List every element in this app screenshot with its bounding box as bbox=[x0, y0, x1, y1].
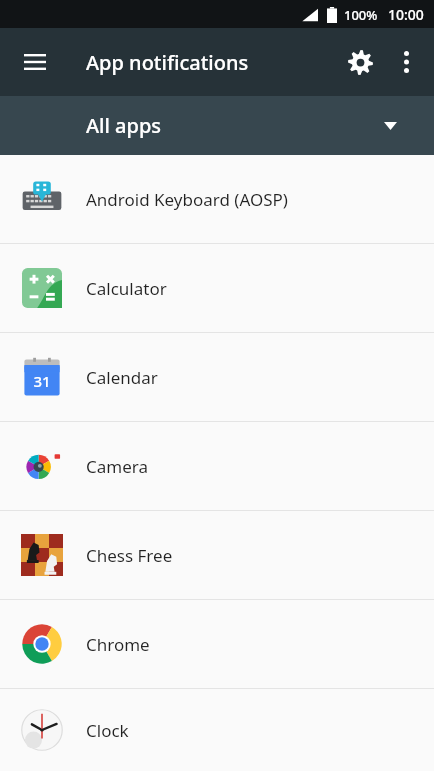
staticText: App notifications bbox=[86, 49, 249, 76]
staticText: Calendar bbox=[86, 366, 158, 389]
button[interactable]: 31 bbox=[0, 333, 434, 421]
button[interactable]: Calculator bbox=[0, 244, 434, 332]
button[interactable]: Android Keyboard (AOSP) bbox=[0, 155, 434, 243]
staticText: Android Keyboard (AOSP) bbox=[86, 188, 288, 211]
button[interactable]: Settings bbox=[336, 38, 384, 86]
staticText: Chrome bbox=[86, 633, 150, 656]
staticText: Calculator bbox=[86, 277, 167, 300]
button[interactable]: All apps bbox=[0, 96, 434, 155]
staticText: Chess Free bbox=[86, 544, 173, 567]
button[interactable]: Camera bbox=[0, 422, 434, 510]
staticText: 31 bbox=[33, 371, 51, 391]
staticText: Camera bbox=[86, 455, 148, 478]
staticText: All apps bbox=[86, 112, 162, 139]
staticText: Clock bbox=[86, 719, 129, 742]
button[interactable]: Chess Free bbox=[0, 511, 434, 599]
button[interactable]: Chrome bbox=[0, 600, 434, 688]
button[interactable]: Open navigation drawer bbox=[11, 38, 59, 86]
button[interactable]: More options bbox=[384, 40, 428, 84]
staticText: 10:00 bbox=[388, 5, 424, 24]
staticText: 100% bbox=[344, 6, 378, 24]
button[interactable]: Clock bbox=[0, 689, 434, 771]
